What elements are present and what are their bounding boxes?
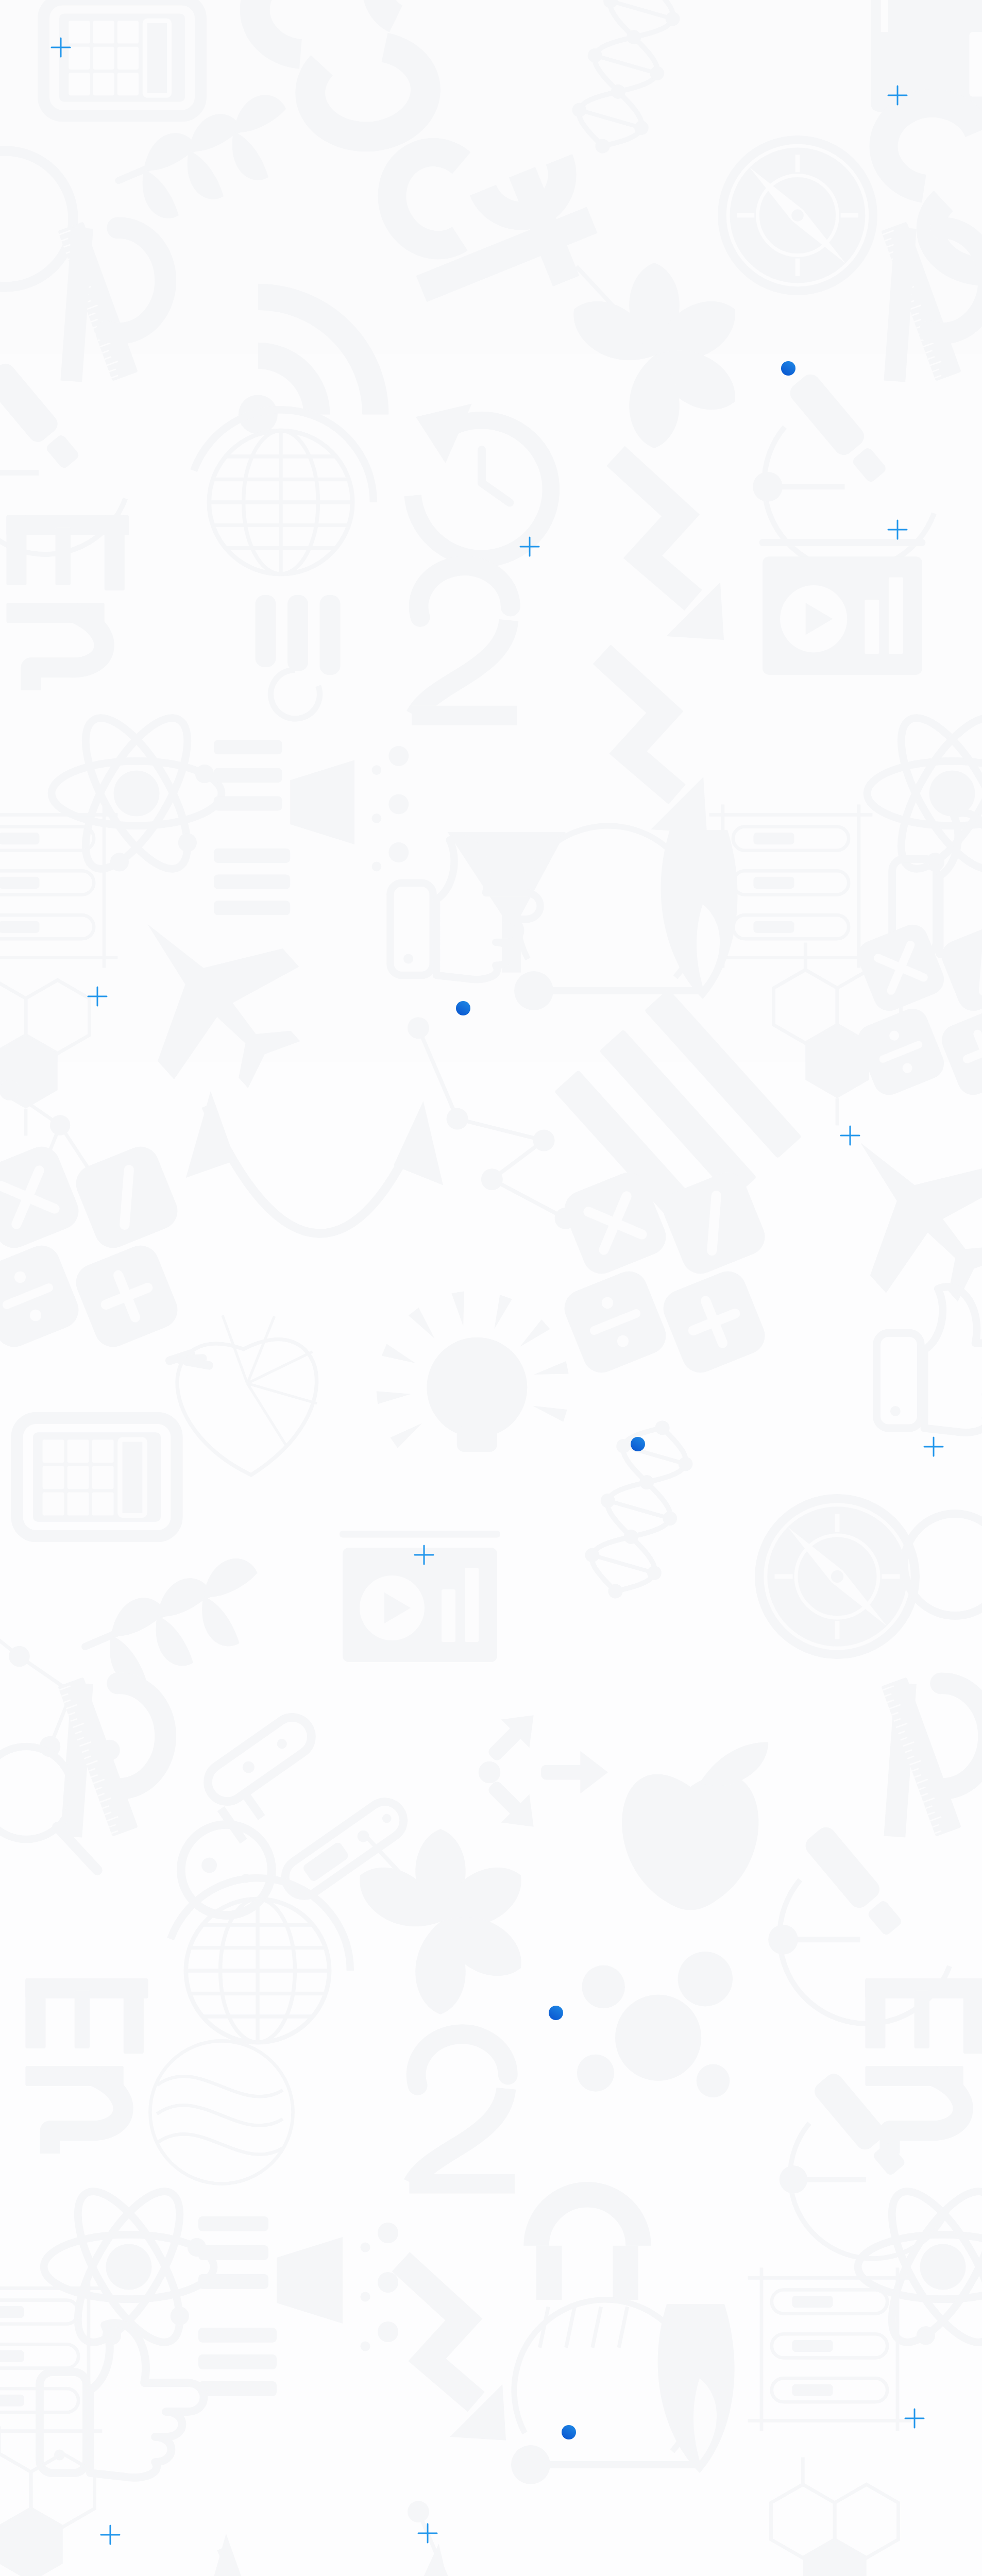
- button[interactable]: Loading indicator: [549, 2006, 563, 2020]
- button[interactable]: Loading indicator: [631, 1437, 645, 1451]
- button[interactable]: Splash background: [0, 0, 982, 2576]
- button[interactable]: Loading indicator: [456, 1001, 470, 1015]
- button[interactable]: Loading indicator: [781, 361, 795, 376]
- button[interactable]: Loading indicator: [562, 2425, 576, 2439]
